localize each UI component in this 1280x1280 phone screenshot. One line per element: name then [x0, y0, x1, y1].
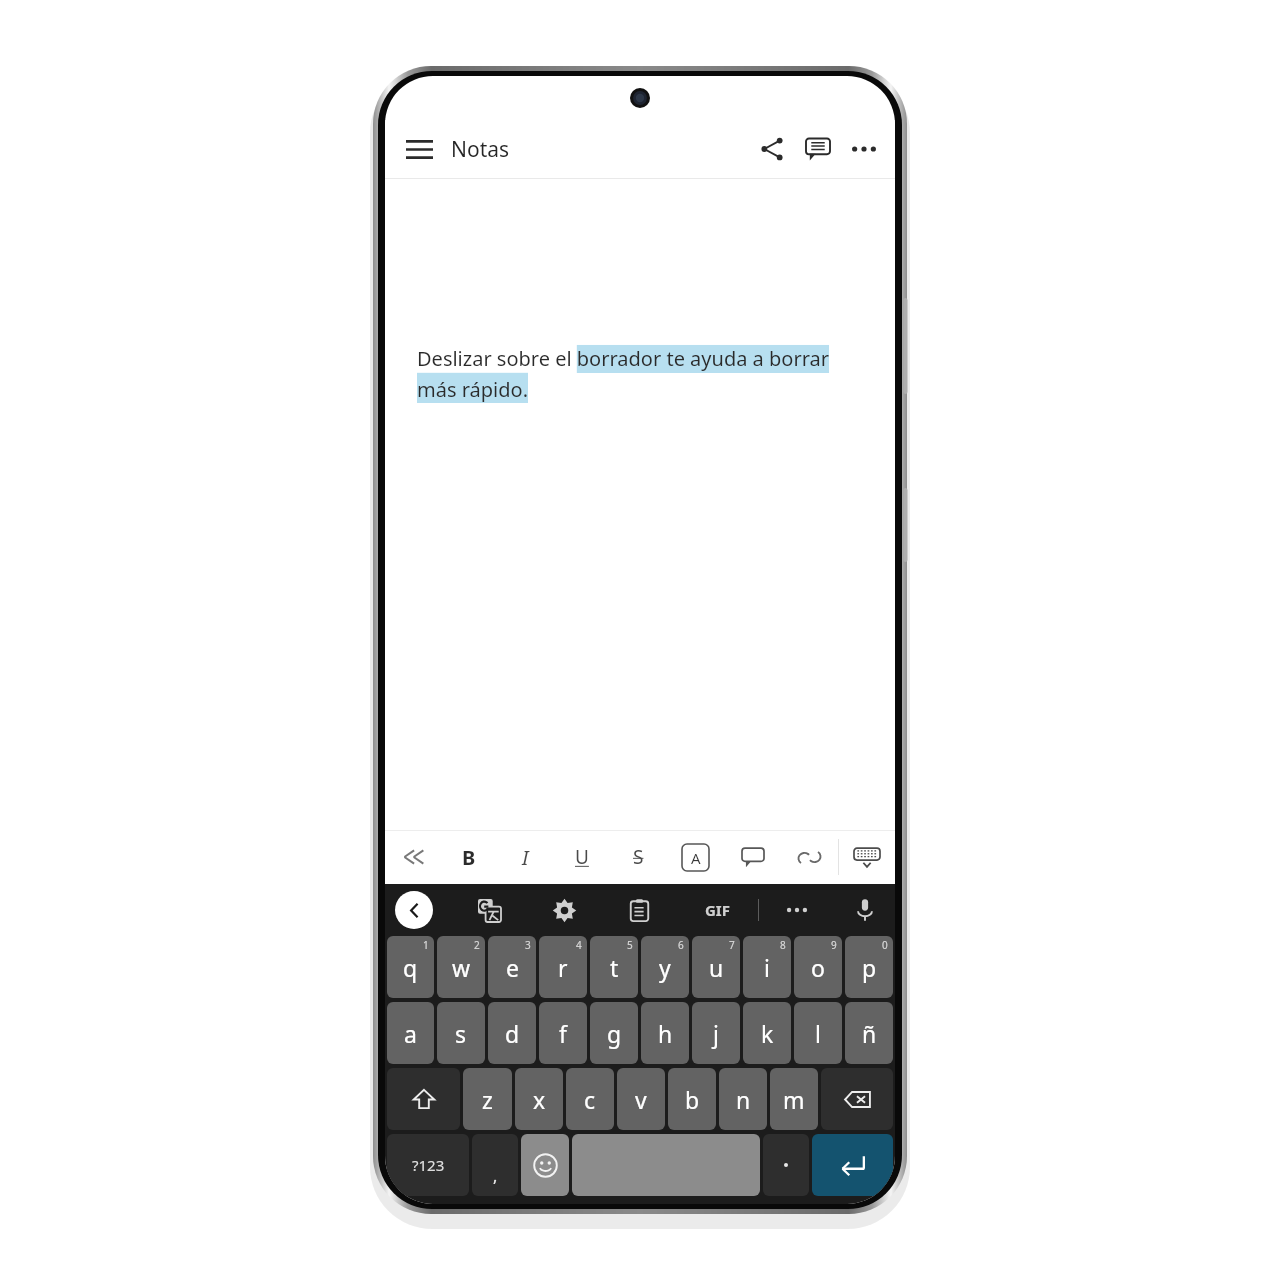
button[interactable]: v: [617, 1068, 665, 1130]
staticText: I: [522, 844, 529, 871]
staticText: A: [691, 848, 701, 868]
button[interactable]: Enter: [812, 1134, 893, 1196]
button[interactable]: l: [794, 1002, 842, 1064]
staticText: g: [607, 1018, 622, 1049]
staticText: x: [533, 1084, 546, 1115]
button[interactable]: d: [488, 1002, 536, 1064]
button[interactable]: Space: [572, 1134, 760, 1196]
button[interactable]: More: [777, 890, 817, 930]
staticText: i: [764, 952, 770, 983]
button[interactable]: j: [692, 1002, 740, 1064]
staticText: 3: [525, 938, 531, 952]
button[interactable]: Insert link: [781, 830, 838, 884]
staticText: f: [559, 1018, 567, 1049]
button[interactable]: e: [488, 936, 536, 998]
staticText: 2: [474, 938, 480, 952]
staticText: m: [783, 1084, 805, 1115]
staticText: p: [862, 952, 877, 983]
staticText: 5: [627, 938, 633, 952]
button[interactable]: Bold: [441, 830, 497, 884]
staticText: d: [505, 1018, 520, 1049]
button[interactable]: b: [668, 1068, 716, 1130]
staticText: ñ: [862, 1018, 877, 1049]
staticText: s: [455, 1018, 467, 1049]
button[interactable]: More options: [841, 126, 887, 172]
staticText: a: [404, 1018, 417, 1049]
button[interactable]: s: [437, 1002, 485, 1064]
staticText: u: [709, 952, 724, 983]
button[interactable]: m: [770, 1068, 818, 1130]
staticText: U: [575, 844, 589, 870]
staticText: y: [659, 952, 671, 983]
button[interactable]: Collapse: [385, 830, 441, 884]
button[interactable]: GIF: [694, 887, 740, 933]
button[interactable]: w: [437, 936, 485, 998]
button[interactable]: Comment: [795, 126, 841, 172]
button[interactable]: Italic: [497, 830, 553, 884]
staticText: ,: [493, 1165, 498, 1187]
staticText: w: [452, 952, 471, 983]
button[interactable]: p: [845, 936, 893, 998]
button[interactable]: Voice input: [845, 890, 885, 930]
button[interactable]: Underline: [553, 830, 610, 884]
button[interactable]: Comma: [472, 1134, 518, 1196]
button[interactable]: Backspace: [821, 1068, 893, 1130]
staticText: h: [658, 1018, 673, 1049]
staticText: Deslizar sobre el borrador te ayuda a bo…: [417, 345, 871, 403]
button[interactable]: h: [641, 1002, 689, 1064]
button[interactable]: Clipboard: [619, 890, 659, 930]
staticText: j: [713, 1018, 719, 1049]
staticText: 1: [423, 938, 429, 952]
button[interactable]: Shift: [387, 1068, 460, 1130]
button[interactable]: y: [641, 936, 689, 998]
button[interactable]: Menu: [397, 127, 441, 171]
button[interactable]: Period: [763, 1134, 809, 1196]
button[interactable]: n: [719, 1068, 767, 1130]
staticText: k: [761, 1018, 774, 1049]
button[interactable]: q: [387, 936, 434, 998]
button[interactable]: Symbols: [387, 1134, 469, 1196]
button[interactable]: c: [566, 1068, 614, 1130]
staticText: r: [558, 952, 568, 983]
button[interactable]: Emoji: [521, 1134, 569, 1196]
staticText: GIF: [705, 900, 730, 920]
staticText: o: [811, 952, 825, 983]
button[interactable]: g: [590, 1002, 638, 1064]
button[interactable]: Translate: [469, 890, 509, 930]
staticText: 8: [780, 938, 786, 952]
button[interactable]: o: [794, 936, 842, 998]
button[interactable]: r: [539, 936, 587, 998]
staticText: S: [633, 844, 644, 870]
button[interactable]: f: [539, 1002, 587, 1064]
button[interactable]: Hide keyboard: [839, 830, 895, 884]
staticText: l: [815, 1018, 821, 1049]
button[interactable]: x: [515, 1068, 563, 1130]
button[interactable]: Share: [749, 126, 795, 172]
staticText: B: [462, 844, 476, 871]
staticText: n: [736, 1084, 751, 1115]
button[interactable]: a: [387, 1002, 434, 1064]
staticText: ?123: [412, 1155, 445, 1175]
button[interactable]: Settings: [544, 890, 584, 930]
staticText: 7: [729, 938, 735, 952]
staticText: 4: [576, 938, 582, 952]
button[interactable]: Strikethrough: [610, 830, 667, 884]
staticText: t: [610, 952, 619, 983]
staticText: q: [403, 952, 418, 983]
staticText: 6: [678, 938, 684, 952]
button[interactable]: k: [743, 1002, 791, 1064]
button[interactable]: u: [692, 936, 740, 998]
staticText: v: [635, 1084, 647, 1115]
button[interactable]: ñ: [845, 1002, 893, 1064]
staticText: c: [584, 1084, 596, 1115]
button[interactable]: Comment: [724, 830, 781, 884]
button[interactable]: t: [590, 936, 638, 998]
staticText: b: [685, 1084, 700, 1115]
staticText: z: [482, 1084, 493, 1115]
staticText: Notas: [451, 135, 510, 164]
button[interactable]: i: [743, 936, 791, 998]
staticText: e: [506, 952, 519, 983]
button[interactable]: Text style: [667, 830, 724, 884]
button[interactable]: Back: [395, 891, 433, 929]
button[interactable]: z: [463, 1068, 512, 1130]
